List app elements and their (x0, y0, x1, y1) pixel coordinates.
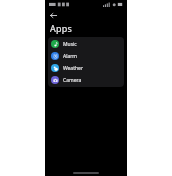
staticText: Camera (63, 77, 82, 84)
button[interactable]: Back (48, 10, 59, 21)
staticText: Weather (63, 65, 83, 72)
button[interactable]: Camera (48, 74, 124, 86)
staticText: Alarm (63, 53, 78, 60)
button[interactable]: Music (48, 38, 124, 50)
staticText: Music (63, 41, 77, 48)
button[interactable]: Alarm (48, 50, 124, 62)
button[interactable]: Weather (48, 62, 124, 74)
staticText: Apps (50, 22, 72, 34)
